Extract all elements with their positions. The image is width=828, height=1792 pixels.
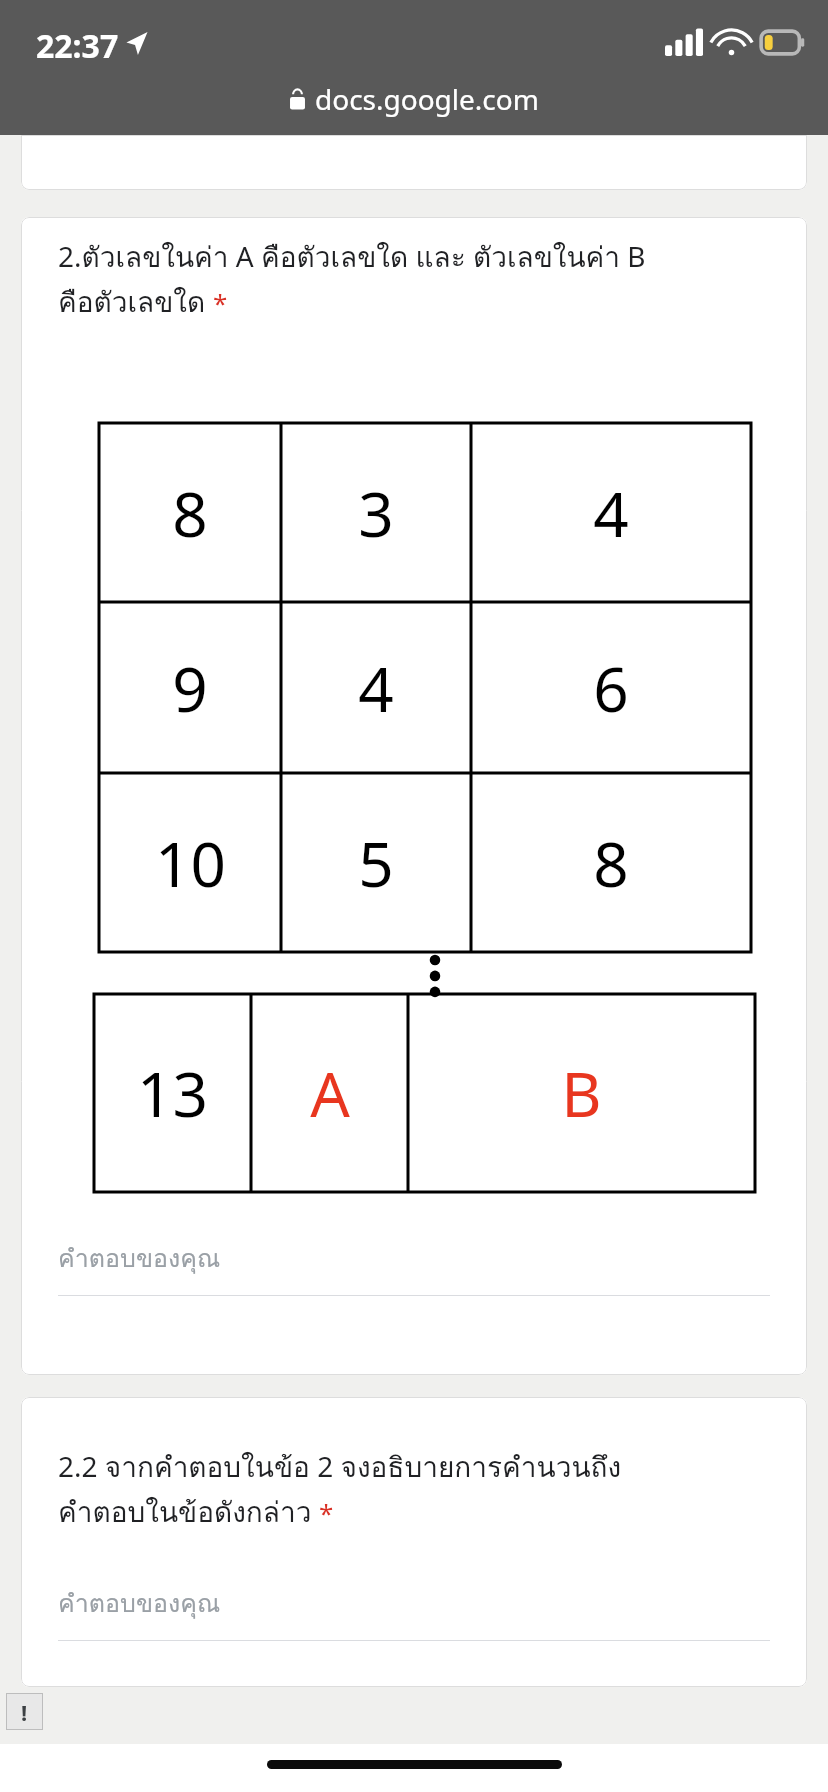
staticText: docs.google.com (315, 80, 539, 118)
staticText: 6 (593, 646, 629, 730)
button[interactable]: 2.ตัวเลขในค่า A คือตัวเลขใด และ ตัวเลขใน… (21, 217, 807, 1375)
staticText: 4 (358, 646, 394, 730)
staticText: 5 (358, 821, 394, 905)
staticText: 2.ตัวเลขในค่า A คือตัวเลขใด และ ตัวเลขใน… (58, 235, 646, 280)
staticText: 2.2 จากคำตอบในข้อ 2 จงอธิบายการคำนวนถึง (58, 1445, 622, 1490)
staticText: ! (21, 1697, 28, 1727)
staticText: * (213, 285, 228, 320)
button[interactable]: 2.2 จากคำตอบในข้อ 2 จงอธิบายการคำนวนถึง (21, 1397, 807, 1687)
staticText: 13 (137, 1051, 208, 1135)
staticText: คำตอบในข้อดังกล่าว (58, 1490, 319, 1535)
staticText: B (561, 1051, 602, 1135)
staticText: คือตัวเลขใด (58, 280, 213, 325)
staticText: 9 (172, 646, 208, 730)
staticText: 10 (155, 821, 226, 905)
staticText: 3 (358, 471, 394, 555)
staticText: 8 (172, 471, 208, 555)
staticText: A (310, 1051, 350, 1135)
staticText: คำตอบของคุณ (58, 1238, 221, 1278)
staticText: 22:37 (36, 24, 119, 68)
staticText: 4 (593, 471, 629, 555)
button[interactable] (21, 135, 807, 190)
button[interactable]: Report (6, 1693, 43, 1730)
button[interactable]: docs.google.com (283, 78, 545, 120)
staticText: * (319, 1495, 334, 1530)
staticText: 8 (593, 821, 629, 905)
staticText: คำตอบของคุณ (58, 1583, 221, 1623)
